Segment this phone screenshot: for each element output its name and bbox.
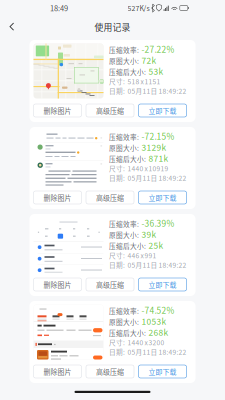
staticText: 尺寸: xyxy=(109,163,125,173)
staticText: 删除图片 xyxy=(43,366,71,376)
staticText: 原图大小: xyxy=(109,56,139,66)
staticText: 压缩效率: xyxy=(109,219,139,229)
staticText: 压缩后大小: xyxy=(109,241,146,251)
staticText: -36.39% xyxy=(141,217,174,229)
staticText: 25k xyxy=(148,239,163,251)
staticText: 原图大小: xyxy=(109,143,139,153)
staticText: 518 x 1151 xyxy=(127,76,160,86)
button[interactable]: 删除图片 xyxy=(33,365,81,378)
button[interactable]: 高级压缩 xyxy=(86,278,134,291)
staticText: 高级压缩 xyxy=(96,192,124,202)
staticText: 立即下载 xyxy=(148,366,176,376)
staticText: 268k xyxy=(148,326,168,338)
staticText: 1053k xyxy=(141,315,166,327)
button[interactable]: 高级压缩 xyxy=(86,191,134,204)
button[interactable]: 立即下载 xyxy=(138,191,186,204)
button[interactable]: 立即下载 xyxy=(138,365,186,378)
button[interactable]: 删除图片 xyxy=(33,104,81,117)
staticText: 日期: xyxy=(109,260,125,270)
staticText: 压缩后大小: xyxy=(109,154,146,164)
staticText: 446 x 991 xyxy=(127,250,156,260)
button[interactable]: 高级压缩 xyxy=(86,104,134,117)
staticText: 压缩效率: xyxy=(109,45,139,55)
staticText: 527K/s xyxy=(128,3,150,13)
staticText: 日期: xyxy=(109,347,125,357)
staticText: 压缩后大小: xyxy=(109,67,146,77)
button[interactable]: 删除图片 xyxy=(33,191,81,204)
staticText: -74.52% xyxy=(141,304,174,316)
staticText: 72k xyxy=(141,54,156,66)
staticText: 18:49 xyxy=(50,3,68,13)
button[interactable]: 立即下载 xyxy=(138,104,186,117)
staticText: 尺寸: xyxy=(109,250,125,260)
staticText: 1440 x 10919 xyxy=(127,163,168,173)
staticText: -72.15% xyxy=(141,130,174,142)
staticText: 立即下载 xyxy=(148,105,176,115)
staticText: 使用记录 xyxy=(94,21,130,33)
staticText: -27.22% xyxy=(141,43,174,55)
staticText: 05月11日 18:49:22 xyxy=(127,260,186,270)
staticText: 05月11日 18:49:22 xyxy=(127,173,186,183)
staticText: 1440 x 3200 xyxy=(127,337,164,347)
staticText: 立即下载 xyxy=(148,192,176,202)
staticText: 压缩后大小: xyxy=(109,328,146,338)
staticText: 立即下载 xyxy=(148,279,176,289)
staticText: 高级压缩 xyxy=(96,279,124,289)
staticText: 删除图片 xyxy=(43,105,71,115)
staticText: 压缩效率: xyxy=(109,132,139,142)
button[interactable]: 高级压缩 xyxy=(86,365,134,378)
staticText: 删除图片 xyxy=(43,279,71,289)
staticText: 05月11日 18:49:22 xyxy=(127,347,186,357)
staticText: 日期: xyxy=(109,173,125,183)
staticText: 05月11日 18:49:22 xyxy=(127,86,186,96)
staticText: 高级压缩 xyxy=(96,366,124,376)
staticText: 871k xyxy=(148,152,168,164)
staticText: 39k xyxy=(141,228,156,240)
staticText: 删除图片 xyxy=(43,192,71,202)
button[interactable]: Back xyxy=(0,16,24,38)
staticText: 3129k xyxy=(141,141,166,153)
staticText: 尺寸: xyxy=(109,76,125,86)
staticText: 原图大小: xyxy=(109,230,139,240)
staticText: 高级压缩 xyxy=(96,105,124,115)
button[interactable]: 删除图片 xyxy=(33,278,81,291)
button[interactable]: 立即下载 xyxy=(138,278,186,291)
staticText: 53k xyxy=(148,65,163,77)
staticText: 日期: xyxy=(109,86,125,96)
staticText: 压缩效率: xyxy=(109,306,139,316)
staticText: 原图大小: xyxy=(109,317,139,327)
staticText: 尺寸: xyxy=(109,337,125,347)
